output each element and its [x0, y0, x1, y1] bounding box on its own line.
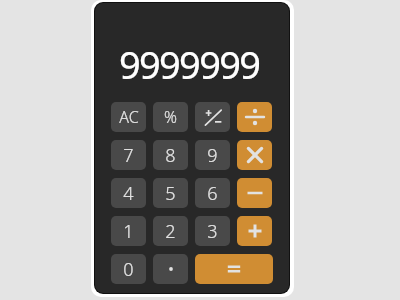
button[interactable]: 9: [195, 140, 230, 170]
staticText: %: [164, 106, 177, 128]
staticText: 5: [165, 181, 176, 206]
button[interactable]: Plus minus: [195, 102, 230, 132]
staticText: 2: [165, 219, 176, 244]
button[interactable]: 4: [111, 178, 146, 208]
button[interactable]: Minus: [237, 178, 272, 208]
button[interactable]: 7: [111, 140, 146, 170]
button[interactable]: 2: [153, 216, 188, 246]
staticText: 0: [123, 257, 134, 282]
button[interactable]: 5: [153, 178, 188, 208]
staticText: 1: [123, 219, 134, 244]
button[interactable]: 6: [195, 178, 230, 208]
staticText: 7: [123, 143, 134, 168]
staticText: 9999999: [119, 38, 260, 90]
staticText: 4: [123, 181, 134, 206]
button[interactable]: Multiply: [237, 140, 272, 170]
button[interactable]: 8: [153, 140, 188, 170]
button[interactable]: Divide: [237, 102, 272, 132]
button[interactable]: %: [153, 102, 188, 132]
staticText: 8: [165, 143, 176, 168]
button[interactable]: AC: [111, 102, 146, 132]
button[interactable]: Decimal point: [153, 254, 188, 284]
button[interactable]: 1: [111, 216, 146, 246]
button[interactable]: 0: [111, 254, 146, 284]
staticText: 6: [207, 181, 218, 206]
button[interactable]: Equals: [195, 254, 273, 284]
staticText: 9: [207, 143, 218, 168]
staticText: AC: [119, 106, 139, 128]
button[interactable]: 3: [195, 216, 230, 246]
button[interactable]: Plus: [237, 216, 272, 246]
staticText: 3: [207, 219, 218, 244]
